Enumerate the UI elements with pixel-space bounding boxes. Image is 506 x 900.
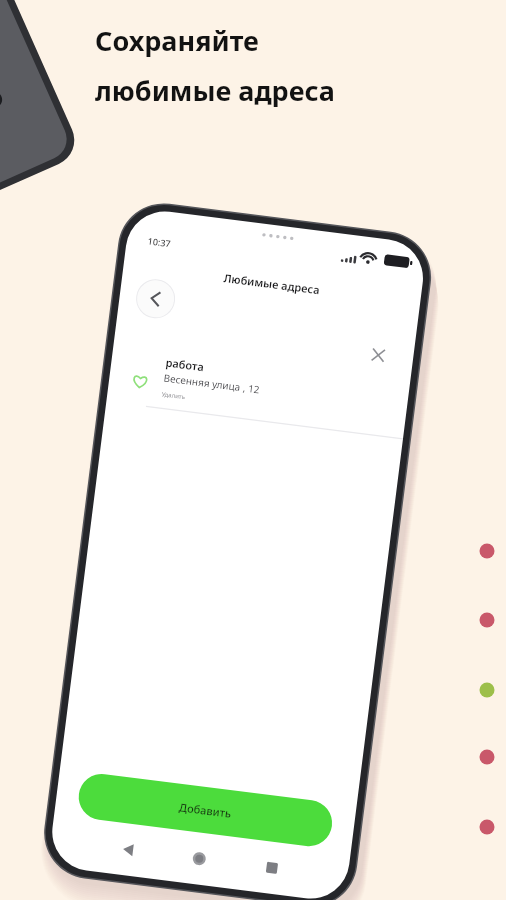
- button[interactable]: [56, 326, 346, 384]
- button[interactable]: Recents: [362, 846, 400, 882]
- button[interactable]: [142, 796, 438, 856]
- button[interactable]: Back: [176, 856, 214, 892]
- button[interactable]: Home: [282, 860, 320, 896]
